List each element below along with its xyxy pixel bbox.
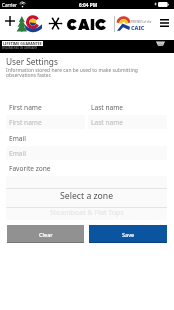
button[interactable]: Last name xyxy=(88,115,167,129)
staticText: Clear xyxy=(39,231,53,238)
staticText: Carrier xyxy=(2,2,17,8)
button[interactable]: First name xyxy=(6,115,85,129)
staticText: User Settings xyxy=(6,56,58,67)
button[interactable]: Select a zone xyxy=(6,176,167,220)
button[interactable]: Email xyxy=(6,146,167,160)
staticText: Information stored here can be used to m… xyxy=(6,67,146,78)
button[interactable]: Menu xyxy=(155,14,173,32)
staticText: ENGINEERED IN GERMANY xyxy=(2,46,38,50)
button[interactable]: Save xyxy=(89,225,167,243)
staticText: Email xyxy=(9,134,26,143)
staticText: LIFETIME GUARANTEE xyxy=(3,41,42,46)
staticText: Last name xyxy=(91,118,124,127)
staticText: Select a zone xyxy=(60,190,114,202)
staticText: Last name xyxy=(91,103,124,112)
staticText: First name xyxy=(9,118,42,127)
staticText: Steamboat & Flat Tops xyxy=(50,208,124,218)
staticText: 6:04 PM xyxy=(79,2,98,9)
staticText: First name xyxy=(9,103,42,112)
staticText: Favorite zone xyxy=(9,164,51,173)
button[interactable]: Clear xyxy=(7,225,84,243)
staticText: CAIC xyxy=(131,24,145,31)
staticText: FRIENDS of the xyxy=(131,20,152,24)
staticText: Email xyxy=(9,149,26,158)
button[interactable]: Advertisement xyxy=(0,40,174,53)
button[interactable]: Add observation xyxy=(1,12,19,30)
staticText: Save xyxy=(122,231,135,238)
